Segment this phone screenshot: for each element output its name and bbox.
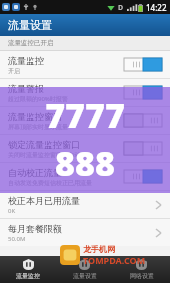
staticText: 网络设置 <box>130 272 154 280</box>
staticText: 每月套餐限额 <box>8 223 62 234</box>
staticText: 0K <box>8 207 16 215</box>
staticText: 流量设置 <box>73 272 97 280</box>
staticText: 流量监控已开启 <box>8 39 54 47</box>
button[interactable]: Toggle <box>124 86 162 99</box>
staticText: 7777 <box>45 92 125 138</box>
staticText: 锁定流量监控窗口 <box>8 139 80 150</box>
staticText: 超过限额的90%时报警 <box>8 95 68 103</box>
button[interactable]: 锁定流量监控窗口 <box>0 135 170 162</box>
button[interactable]: 流量设置 <box>56 256 113 283</box>
staticText: 龙手机网 <box>83 244 115 254</box>
button[interactable]: 流量监控 <box>0 51 170 78</box>
staticText: D <box>118 3 124 13</box>
staticText: 关闭时流量监控窗口可拖动 <box>8 151 80 159</box>
staticText: 流量监控 <box>16 272 40 280</box>
button[interactable]: Toggle <box>124 58 162 71</box>
staticText: 流量监控 <box>8 55 44 66</box>
button[interactable]: 自动校正流量 <box>0 163 170 190</box>
staticText: 自动发送免费短信校正已用流量 <box>8 179 92 187</box>
button[interactable]: 流量监控 <box>0 256 56 283</box>
staticText: 流量警报 <box>8 83 44 94</box>
button[interactable]: Toggle <box>124 142 162 155</box>
button[interactable]: 网络设置 <box>113 256 170 283</box>
staticText: 自动校正流量 <box>8 167 62 178</box>
staticText: 校正本月已用流量 <box>8 195 80 206</box>
staticText: 50.0M <box>8 235 26 243</box>
staticText: TOMPDA.COM <box>83 254 146 266</box>
button[interactable]: 流量警报 <box>0 79 170 106</box>
button[interactable]: 流量监控窗口 <box>0 107 170 134</box>
staticText: 开启 <box>8 67 20 75</box>
staticText: 888 <box>55 140 115 186</box>
button[interactable]: Toggle <box>124 170 162 183</box>
button[interactable]: 每月套餐限额 <box>0 219 170 246</box>
button[interactable]: Toggle <box>124 114 162 127</box>
staticText: 流量监控窗口 <box>8 111 62 122</box>
staticText: 流量设置 <box>8 18 52 32</box>
button[interactable]: 校正本月已用流量 <box>0 191 170 218</box>
staticText: 14:22 <box>146 2 167 13</box>
staticText: 屏幕顶部实时显示流量 <box>8 123 68 131</box>
